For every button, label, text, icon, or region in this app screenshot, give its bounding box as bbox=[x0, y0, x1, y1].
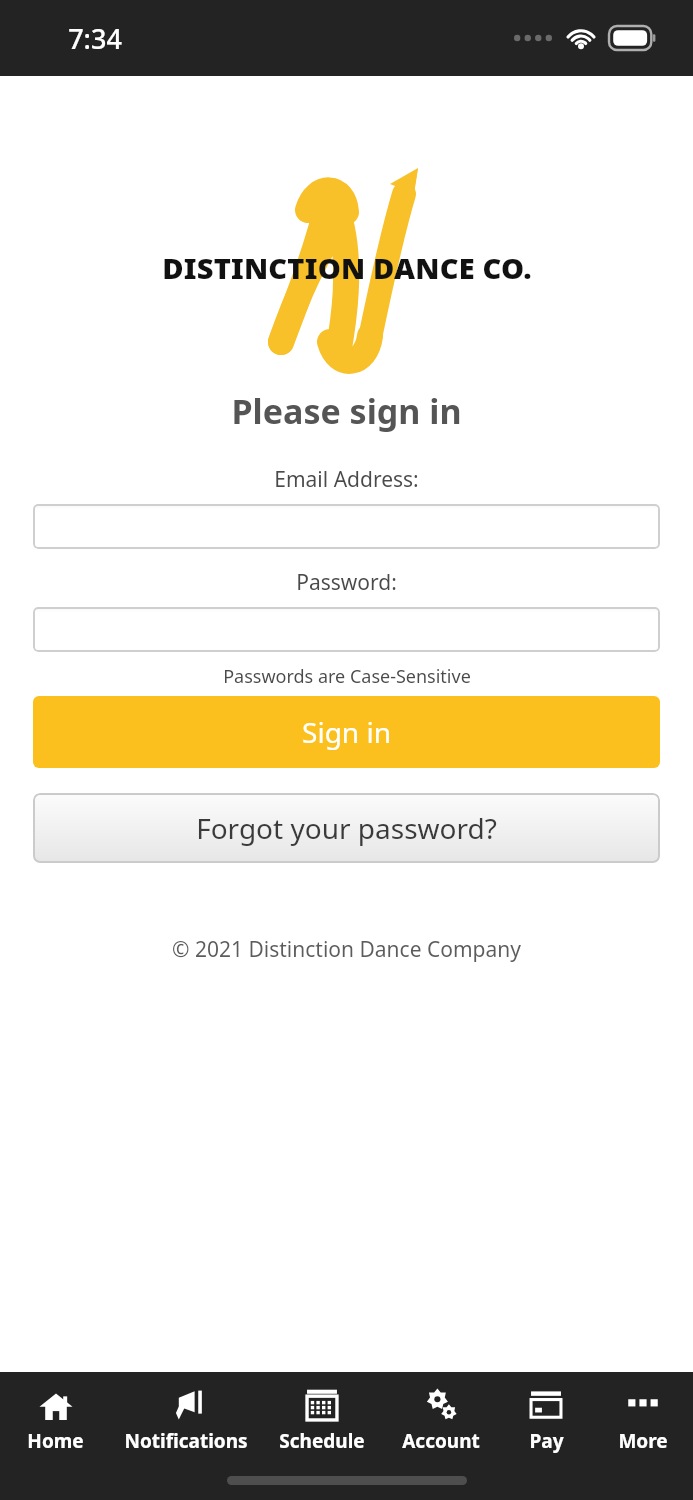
button[interactable]: Pay bbox=[499, 1379, 593, 1454]
staticText: 7:34 bbox=[68, 20, 122, 57]
staticText: Please sign in bbox=[231, 388, 462, 434]
other: Schedule bbox=[305, 1388, 339, 1422]
staticText: © 2021 Distinction Dance Company bbox=[172, 935, 521, 964]
staticText: DISTINCTION DANCE CO. bbox=[162, 248, 532, 287]
staticText: Pay bbox=[529, 1428, 564, 1454]
button[interactable] bbox=[33, 504, 660, 549]
staticText: Notifications bbox=[124, 1428, 248, 1454]
staticText: More bbox=[618, 1428, 668, 1454]
other: Notifications bbox=[168, 1387, 204, 1423]
button[interactable]: Forgot your password? bbox=[33, 793, 660, 863]
button[interactable]: Home bbox=[0, 1379, 111, 1454]
other: Pay bbox=[529, 1388, 563, 1422]
staticText: Sign in bbox=[302, 713, 391, 751]
staticText: Password: bbox=[296, 568, 397, 597]
button[interactable]: More bbox=[593, 1379, 693, 1454]
button[interactable]: Account bbox=[383, 1379, 499, 1454]
staticText: Schedule bbox=[279, 1428, 365, 1454]
staticText: Home bbox=[27, 1428, 84, 1454]
staticText: Account bbox=[402, 1428, 480, 1454]
other: Home bbox=[38, 1387, 74, 1423]
staticText: Passwords are Case-Sensitive bbox=[223, 664, 471, 689]
button[interactable]: Schedule bbox=[261, 1379, 383, 1454]
button[interactable]: Sign in bbox=[33, 696, 660, 768]
staticText: Forgot your password? bbox=[196, 809, 497, 847]
other: More bbox=[625, 1387, 661, 1423]
staticText: Email Address: bbox=[274, 465, 419, 494]
button[interactable] bbox=[33, 607, 660, 652]
button[interactable]: Notifications bbox=[111, 1379, 261, 1454]
other: Account bbox=[423, 1387, 459, 1423]
